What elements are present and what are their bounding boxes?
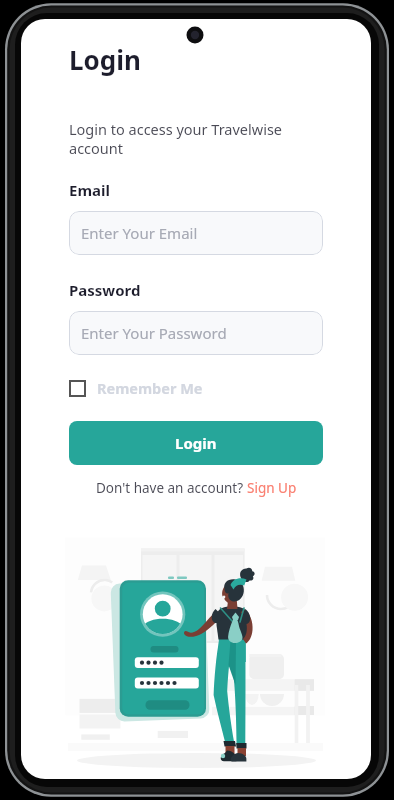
button[interactable]: Enter Your Email: [69, 211, 323, 255]
staticText: Sign Up: [247, 479, 297, 497]
staticText: Login: [175, 433, 217, 453]
button[interactable]: Remember Me: [69, 376, 203, 400]
staticText: Don't have an account?: [96, 479, 247, 497]
staticText: Login to access your Travelwise account: [69, 119, 283, 158]
staticText: Remember Me: [97, 378, 203, 398]
staticText: Enter Your Password: [81, 323, 227, 343]
staticText: Login: [69, 42, 141, 77]
button[interactable]: Enter Your Password: [69, 311, 323, 355]
staticText: Enter Your Email: [81, 223, 198, 243]
button[interactable]: Login: [69, 421, 323, 465]
button[interactable]: Don't have an account?: [96, 479, 297, 497]
staticText: Password: [69, 280, 141, 300]
staticText: Email: [69, 180, 110, 200]
